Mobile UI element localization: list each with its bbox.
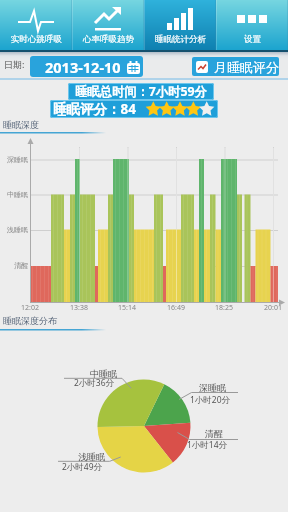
staticText: 清醒 — [14, 261, 28, 270]
staticText: 13:38 — [70, 303, 88, 313]
staticText: 睡眠评分：84 — [53, 100, 136, 118]
button[interactable]: 月睡眠评分 — [192, 57, 279, 76]
staticText: 日期: — [4, 58, 25, 70]
button[interactable]: 2013-12-10 — [30, 56, 143, 77]
staticText: 实时心跳呼吸 — [11, 34, 62, 45]
button[interactable]: 心率呼吸趋势 — [72, 0, 144, 50]
staticText: 心率呼吸趋势 — [83, 34, 134, 45]
staticText: 睡眠深度分布 — [3, 315, 57, 326]
staticText: 月睡眠评分 — [214, 59, 279, 75]
staticText: 20:01 — [264, 303, 282, 313]
staticText: 2小时49分 — [62, 461, 103, 473]
staticText: 1小时20分 — [190, 394, 231, 406]
staticText: 浅睡眠 — [78, 451, 105, 462]
staticText: 中睡眠 — [90, 368, 117, 379]
staticText: 睡眠统计分析 — [155, 34, 206, 45]
staticText: 浅睡眠 — [7, 225, 28, 234]
staticText: 2小时36分 — [74, 377, 115, 389]
staticText: 清醒 — [205, 428, 223, 439]
staticText: 睡眠总时间：7小时59分 — [75, 83, 207, 100]
staticText: 1小时14分 — [187, 439, 228, 451]
button[interactable]: 设置 — [216, 0, 288, 50]
staticText: 18:25 — [215, 303, 233, 313]
staticText: 中睡眠 — [7, 190, 28, 199]
staticText: 设置 — [244, 34, 261, 45]
staticText: 深睡眠 — [7, 155, 28, 164]
staticText: 睡眠深度 — [3, 119, 39, 130]
staticText: 16:49 — [167, 303, 185, 313]
staticText: 12:02 — [21, 303, 39, 313]
button[interactable]: 睡眠统计分析 — [144, 0, 216, 50]
staticText: 15:14 — [118, 303, 136, 313]
staticText: 深睡眠 — [199, 382, 226, 393]
staticText: 2013-12-10 — [45, 57, 121, 77]
button[interactable]: 实时心跳呼吸 — [0, 0, 72, 50]
